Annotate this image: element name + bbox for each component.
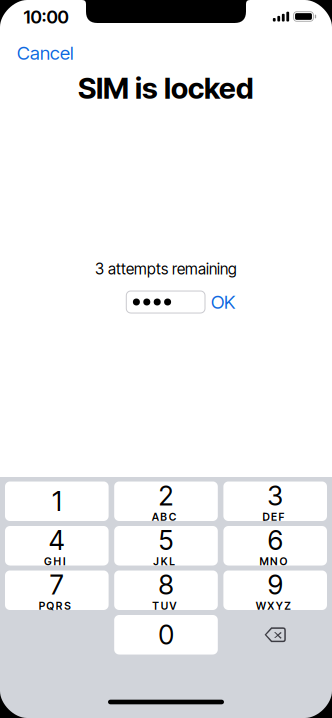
staticText: DEF <box>262 510 288 523</box>
staticText: 3 <box>267 480 283 512</box>
button[interactable]: 1 <box>5 481 109 521</box>
button[interactable]: OK <box>208 291 238 313</box>
staticText: GHI <box>44 555 70 568</box>
staticText: 7 <box>50 569 64 601</box>
button[interactable]: Cancel <box>17 39 87 67</box>
button[interactable]: 9 <box>223 570 327 610</box>
button[interactable]: 0 <box>114 615 218 654</box>
button[interactable]: 4 <box>5 526 109 565</box>
staticText: 0 <box>158 619 173 651</box>
staticText: TUV <box>152 599 180 612</box>
staticText: 10:00 <box>23 6 68 28</box>
staticText: Cancel <box>17 42 74 64</box>
staticText: OK <box>211 291 235 313</box>
button[interactable]: 5 <box>114 526 218 565</box>
button[interactable]: 2 <box>114 481 218 521</box>
button[interactable]: 3 <box>223 481 327 521</box>
staticText: MNO <box>259 555 291 568</box>
staticText: 6 <box>268 524 283 556</box>
staticText: 8 <box>158 569 173 601</box>
staticText: PQRS <box>39 599 75 612</box>
staticText: 3 attempts remaining <box>95 260 237 278</box>
staticText: 1 <box>52 485 61 517</box>
staticText: JKL <box>153 555 179 568</box>
button[interactable]: 6 <box>223 526 327 565</box>
staticText: WXYZ <box>256 599 295 612</box>
staticText: 9 <box>268 569 283 601</box>
button[interactable]: 7 <box>5 570 109 610</box>
staticText: 2 <box>158 480 173 512</box>
button[interactable]: 8 <box>114 570 218 610</box>
staticText: 5 <box>158 524 173 556</box>
button[interactable]: Delete <box>223 615 327 654</box>
staticText: SIM is locked <box>78 70 254 106</box>
staticText: 4 <box>49 524 65 556</box>
staticText: ABC <box>152 510 180 523</box>
